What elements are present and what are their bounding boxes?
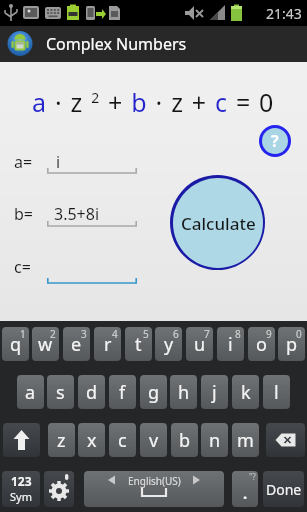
staticText: Calculate [181, 212, 256, 235]
staticText: d [86, 380, 98, 405]
staticText: z [57, 428, 66, 453]
staticText: o [256, 332, 267, 357]
button[interactable] [266, 423, 305, 457]
staticText: t [135, 332, 142, 357]
button[interactable]: r [94, 327, 121, 361]
staticText: r [104, 332, 112, 357]
staticText: v [149, 428, 159, 453]
staticText: ? [271, 130, 279, 152]
staticText: English(US) [128, 474, 181, 488]
button[interactable]: z [48, 423, 75, 457]
staticText: b [179, 428, 191, 453]
button[interactable]: b [171, 423, 198, 457]
staticText: j [212, 380, 217, 405]
staticText: a= [14, 151, 33, 173]
staticText: n [209, 428, 221, 453]
button[interactable]: Calculate [170, 175, 265, 270]
staticText: b= [14, 203, 33, 225]
button[interactable]: l [263, 375, 290, 409]
button[interactable]: . [232, 471, 258, 507]
staticText: 21:43 [266, 4, 302, 23]
staticText: y [164, 332, 174, 357]
staticText: m [237, 428, 254, 453]
button[interactable]: English(US) [84, 471, 224, 507]
button[interactable]: m [232, 423, 259, 457]
button[interactable]: k [232, 375, 259, 409]
staticText: e [71, 332, 82, 357]
button[interactable]: y [155, 327, 182, 361]
staticText: a · z 2 + b · z + c = 0 [32, 85, 275, 119]
staticText: 5 [143, 327, 149, 341]
button[interactable]: p [278, 327, 305, 361]
button[interactable]: c [109, 423, 136, 457]
staticText: i [56, 151, 61, 173]
staticText: 1 [20, 327, 26, 341]
staticText: 7 [204, 327, 210, 341]
staticText: i [228, 332, 233, 357]
staticText: Sym [10, 489, 32, 504]
staticText: 2 [50, 327, 56, 341]
staticText: . [243, 483, 248, 503]
button[interactable]: h [170, 375, 197, 409]
button[interactable]: o [248, 327, 275, 361]
staticText: q [10, 332, 22, 357]
button[interactable]: s [47, 375, 74, 409]
staticText: x [87, 428, 97, 453]
button[interactable]: ? [259, 125, 291, 157]
button[interactable]: u [186, 327, 213, 361]
button[interactable]: Done [263, 471, 304, 507]
button[interactable]: t [125, 327, 152, 361]
button[interactable]: j [201, 375, 228, 409]
staticText: g [148, 380, 160, 405]
button[interactable]: e [63, 327, 90, 361]
staticText: "? [249, 471, 256, 482]
button[interactable]: a [17, 375, 44, 409]
staticText: k [241, 380, 251, 405]
staticText: 123 [11, 473, 32, 489]
button[interactable]: f [109, 375, 136, 409]
staticText: 8 [235, 327, 241, 341]
staticText: f [119, 380, 126, 405]
staticText: 3 [81, 327, 87, 341]
button[interactable]: v [140, 423, 167, 457]
button[interactable]: w [32, 327, 59, 361]
button[interactable]: g [140, 375, 167, 409]
staticText: p [286, 332, 298, 357]
staticText: u [194, 332, 206, 357]
button[interactable] [44, 471, 74, 507]
button[interactable] [3, 423, 40, 457]
staticText: c= [14, 256, 31, 278]
staticText: 3.5+8i [54, 203, 100, 225]
staticText: 4 [112, 327, 118, 341]
staticText: Done [266, 480, 302, 499]
button[interactable]: q [2, 327, 29, 361]
button[interactable]: x [78, 423, 105, 457]
staticText: c [118, 428, 127, 453]
staticText: w [38, 332, 53, 357]
staticText: Complex Numbers [46, 33, 187, 55]
staticText: 0 [296, 327, 302, 341]
button[interactable]: n [201, 423, 228, 457]
staticText: 6 [173, 327, 179, 341]
staticText: l [274, 380, 279, 405]
staticText: h [178, 380, 190, 405]
staticText: s [56, 380, 65, 405]
staticText: 9 [266, 327, 272, 341]
button[interactable]: 123 [2, 471, 40, 507]
staticText: a [25, 380, 36, 405]
button[interactable]: d [78, 375, 105, 409]
button[interactable]: i [217, 327, 244, 361]
